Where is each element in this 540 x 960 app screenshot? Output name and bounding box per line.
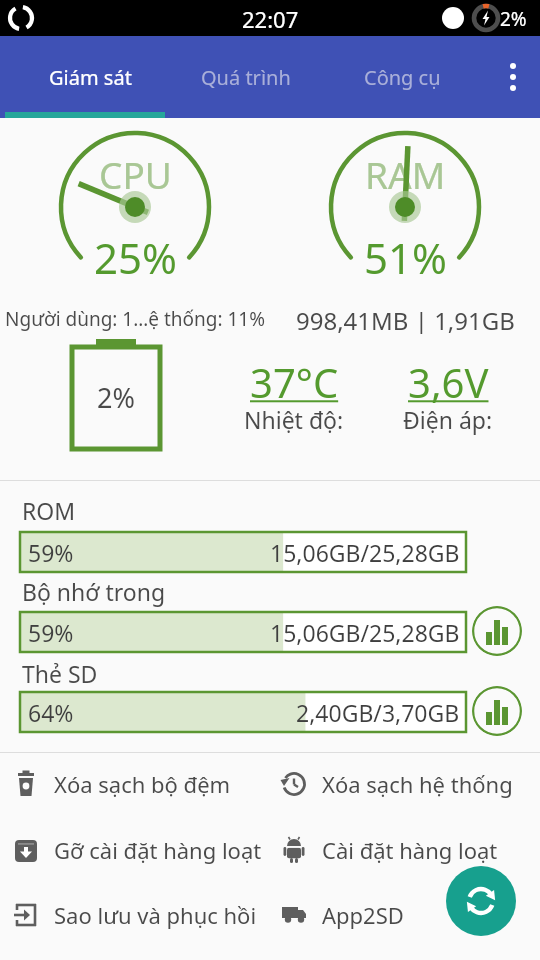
button[interactable]: Xóa sạch bộ đệm [6,760,264,808]
staticText: Nhiệt độ: [244,404,344,435]
staticText: Sao lưu và phục hồi [54,900,257,930]
staticText: RAM [365,149,446,197]
staticText: 2,40GB/3,70GB [296,697,460,728]
staticText: 22:07 [242,4,299,32]
staticText: 59% [28,537,74,568]
button[interactable]: Xóa sạch hệ thống [274,760,534,808]
button[interactable] [472,686,522,736]
button[interactable]: Sao lưu và phục hồi [6,891,264,939]
button[interactable]: Quá trình [166,36,326,118]
staticText: ROM [22,495,76,526]
staticText: 15,06GB/25,28GB [270,617,460,648]
staticText: Quá trình [201,64,291,91]
staticText: Cài đặt hàng loạt [322,835,498,865]
staticText: Điện áp: [403,404,493,435]
staticText: 2% [500,6,527,30]
staticText: Người dùng: 1…ệ thống: 11% [5,306,265,332]
button[interactable]: Gỡ cài đặt hàng loạt [6,826,264,874]
staticText: Xóa sạch bộ đệm [54,769,231,799]
staticText: 998,41MB | 1,91GB [296,304,515,334]
staticText: Gỡ cài đặt hàng loạt [54,835,262,865]
staticText: Thẻ SD [22,658,98,689]
staticText: 2% [97,379,135,416]
button[interactable]: App2SD [274,891,474,939]
button[interactable] [446,866,516,936]
staticText: 3,6V [408,355,489,403]
staticText: CPU [99,149,172,197]
staticText: 59% [28,617,74,648]
button[interactable] [495,56,531,112]
button[interactable] [472,606,522,656]
staticText: App2SD [322,900,404,930]
button[interactable]: Giám sát [10,36,170,118]
staticText: 64% [28,697,74,728]
staticText: Công cụ [364,64,441,91]
button[interactable]: Công cụ [322,36,482,118]
staticText: Xóa sạch hệ thống [322,769,513,799]
staticText: Bộ nhớ trong [22,576,166,607]
staticText: 15,06GB/25,28GB [270,537,460,568]
staticText: Giám sát [49,64,132,91]
button[interactable]: Cài đặt hàng loạt [274,826,534,874]
staticText: 25% [94,229,177,283]
staticText: 51% [364,229,447,283]
staticText: 37°C [250,355,339,403]
